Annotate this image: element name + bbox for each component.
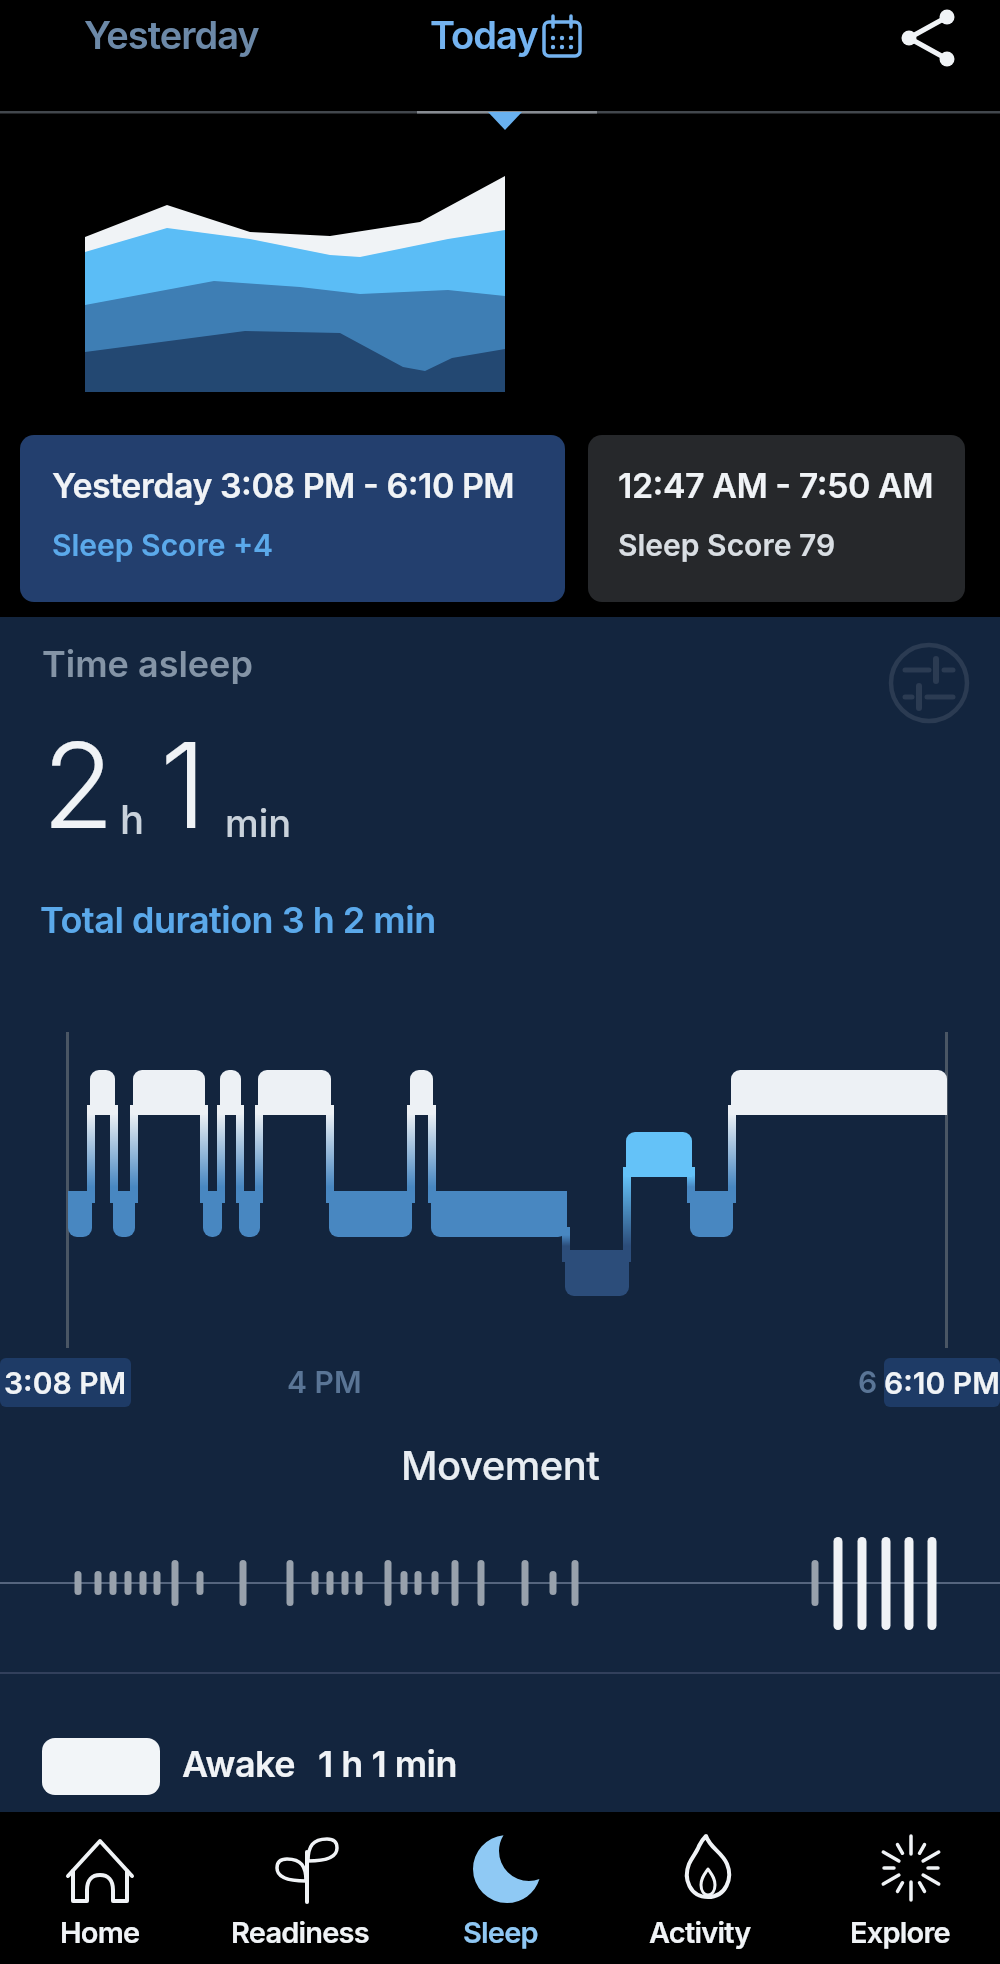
staticText: Sleep Score 79 <box>618 527 836 563</box>
staticText: Movement <box>401 1441 600 1489</box>
staticText: Readiness <box>231 1915 369 1950</box>
staticText: 12:47 AM - 7:50 AM <box>618 465 934 506</box>
staticText: Sleep Score +4 <box>52 527 274 563</box>
button[interactable] <box>878 0 978 96</box>
staticText: Explore <box>850 1915 950 1950</box>
staticText: Home <box>60 1915 140 1950</box>
staticText: Total duration 3 h 2 min <box>40 898 436 942</box>
staticText: Activity <box>649 1915 751 1950</box>
button[interactable]: Yesterday 3:08 PM - 6:10 PM <box>20 435 565 602</box>
staticText: 3:08 PM <box>4 1365 127 1401</box>
button[interactable]: Explore <box>800 1812 1000 1964</box>
staticText: Awake <box>182 1742 296 1786</box>
staticText: min <box>225 800 292 846</box>
button[interactable]: Activity <box>600 1812 800 1964</box>
staticText: 4 PM <box>287 1364 362 1400</box>
staticText: Yesterday 3:08 PM - 6:10 PM <box>52 465 515 506</box>
button[interactable] <box>60 0 300 96</box>
staticText: Time asleep <box>42 642 253 686</box>
staticText: 6 <box>858 1364 878 1400</box>
staticText: Yesterday <box>84 12 259 58</box>
staticText: Sleep <box>463 1915 538 1950</box>
staticText: 1 h 1 min <box>318 1742 458 1786</box>
staticText: 2 <box>42 714 115 857</box>
staticText: 6:10 PM <box>884 1365 1000 1401</box>
staticText: Today <box>430 12 538 58</box>
button[interactable] <box>885 639 973 727</box>
button[interactable] <box>417 0 597 96</box>
button[interactable]: Home <box>0 1812 200 1964</box>
button[interactable]: 12:47 AM - 7:50 AM <box>588 435 965 602</box>
button[interactable]: Readiness <box>200 1812 400 1964</box>
button[interactable]: Sleep <box>400 1812 600 1964</box>
staticText: 1 <box>160 714 207 857</box>
staticText: h <box>120 795 145 843</box>
